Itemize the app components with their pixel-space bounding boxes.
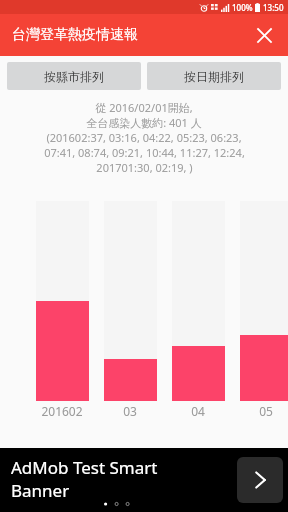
- staticText: 按日期排列: [184, 69, 244, 84]
- staticText: 按縣市排列: [44, 69, 104, 84]
- staticText: 03: [100, 403, 160, 419]
- staticText: Banner: [11, 479, 70, 502]
- staticText: 13:50: [263, 2, 284, 13]
- staticText: 07:41, 08:74, 09:21, 10:44, 11:27, 12:24…: [44, 145, 245, 160]
- button[interactable]: 按縣市排列: [7, 62, 141, 90]
- staticText: 台灣登革熱疫情速報: [12, 26, 138, 44]
- button[interactable]: Open ad: [237, 457, 283, 503]
- button[interactable]: Close: [248, 19, 280, 51]
- button[interactable]: AdMob Test Smart: [0, 448, 288, 512]
- staticText: 05: [236, 403, 288, 419]
- staticText: (201602:37, 03:16, 04:22, 05:23, 06:23,: [46, 130, 242, 145]
- button[interactable]: 按日期排列: [147, 62, 281, 90]
- staticText: 100%: [232, 2, 253, 13]
- staticText: 201602: [32, 403, 92, 419]
- button[interactable]: Infection bar chart: [0, 175, 288, 512]
- staticText: 從 2016/02/01開始,: [95, 100, 193, 115]
- staticText: 201701:30, 02:19, ): [96, 160, 193, 175]
- staticText: AdMob Test Smart: [11, 456, 158, 479]
- staticText: 04: [168, 403, 228, 419]
- staticText: 全台感染人數約: 401 人: [86, 115, 202, 130]
